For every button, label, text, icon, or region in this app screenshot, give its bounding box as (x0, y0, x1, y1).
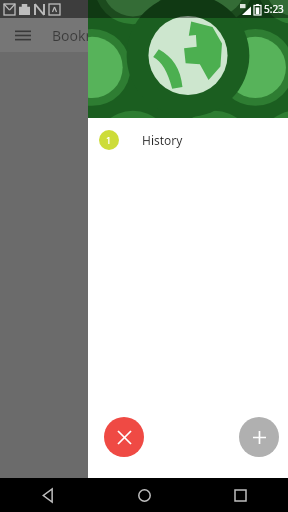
button[interactable]: Home (96, 478, 192, 512)
staticText: Bookmarks (52, 26, 127, 45)
button[interactable]: Recent apps (192, 478, 288, 512)
button[interactable]: Open navigation drawer (12, 24, 34, 46)
staticText: History (142, 132, 183, 148)
staticText: 1 (106, 134, 112, 146)
button[interactable]: Add (239, 417, 279, 457)
staticText: 5:23 (264, 2, 284, 16)
button[interactable]: Close (104, 417, 144, 457)
button[interactable]: 1 (88, 118, 288, 162)
button[interactable]: Back (0, 478, 96, 512)
